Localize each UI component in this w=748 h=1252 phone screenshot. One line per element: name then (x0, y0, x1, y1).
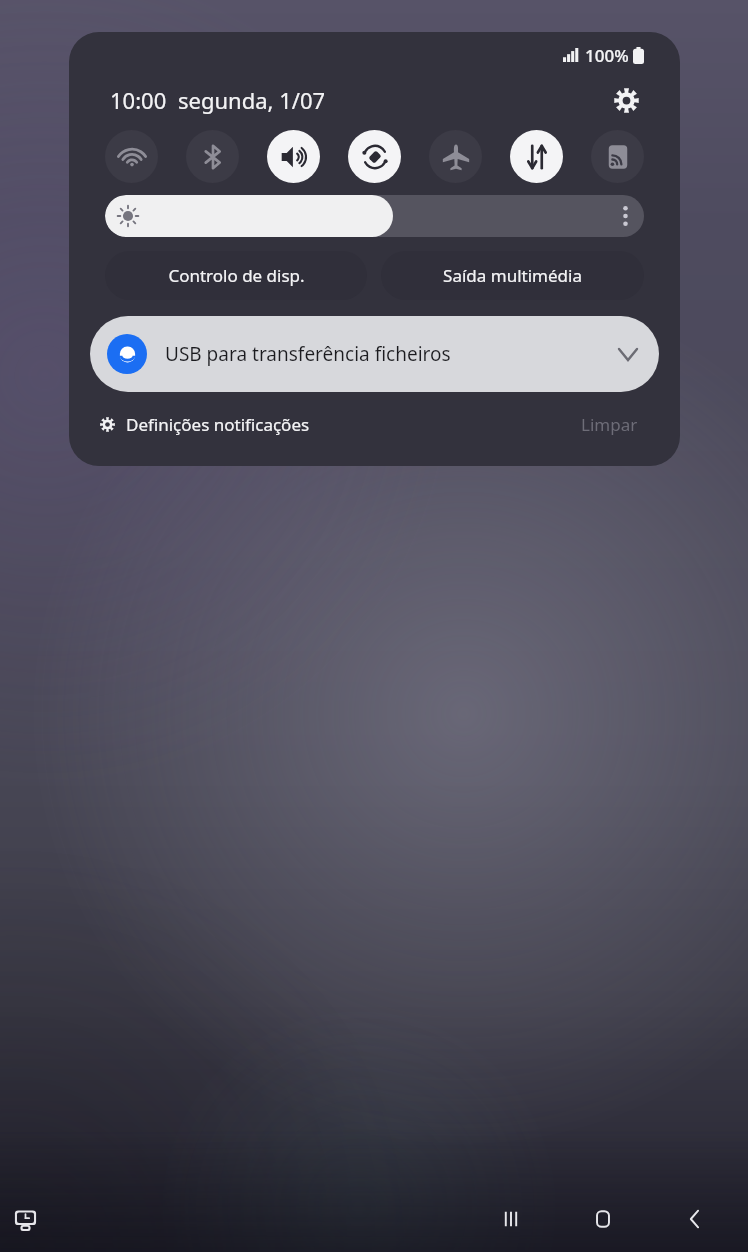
staticText: Controlo de disp. (168, 264, 305, 287)
button[interactable]: ROTATE (348, 130, 401, 183)
button[interactable]: CAST (591, 130, 644, 183)
button[interactable]: Limpar (577, 409, 642, 440)
button[interactable]: SOUND (267, 130, 320, 183)
button[interactable]: Definições (606, 80, 646, 120)
button[interactable]: USB para transferência ficheiros (90, 316, 659, 392)
button[interactable]: Voltar (672, 1196, 718, 1242)
button[interactable]: Definições notificações (96, 409, 314, 440)
staticText: Limpar (581, 413, 638, 436)
staticText: segunda, 1/07 (178, 85, 326, 115)
button[interactable]: Início (580, 1196, 626, 1242)
button[interactable]: WIFI (105, 130, 158, 183)
staticText: 100% (585, 44, 629, 67)
button[interactable]: Controlo de disp. (105, 251, 367, 300)
button[interactable]: Recentes (488, 1196, 534, 1242)
staticText: Definições notificações (126, 413, 310, 436)
button[interactable]: BT (186, 130, 239, 183)
button[interactable]: Mostrar teclado (5, 1200, 45, 1240)
staticText: Saída multimédia (443, 264, 582, 287)
button[interactable]: Brilho (105, 195, 644, 237)
staticText: USB para transferência ficheiros (165, 341, 451, 367)
button[interactable]: DATA (510, 130, 563, 183)
button[interactable]: Saída multimédia (381, 251, 644, 300)
staticText: 10:00 (110, 85, 167, 115)
button[interactable]: PLANE (429, 130, 482, 183)
